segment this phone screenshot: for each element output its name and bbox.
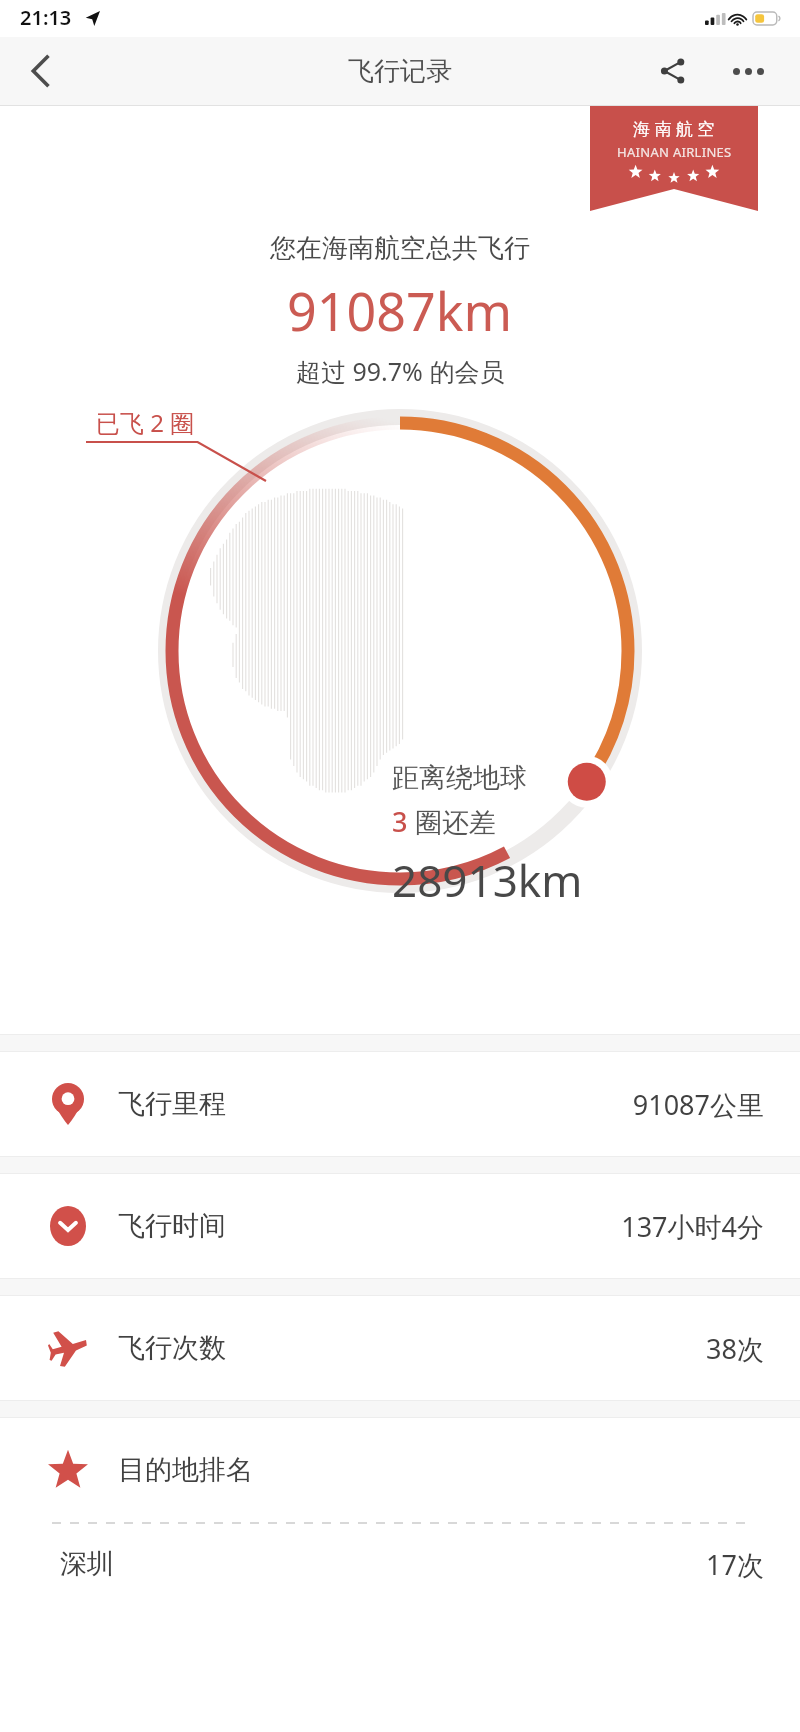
staticText: 91087km (287, 275, 513, 346)
staticText: 飞行时间 (118, 1209, 226, 1243)
staticText: 已飞 2 圈 (96, 406, 195, 439)
button[interactable]: Back (0, 37, 80, 105)
button[interactable]: 飞行时间 (0, 1174, 800, 1278)
staticText: 飞行里程 (118, 1087, 226, 1121)
staticText: 您在海南航空总共飞行 (270, 232, 530, 265)
staticText: 飞行次数 (118, 1331, 226, 1365)
staticText: 深圳 (60, 1547, 114, 1581)
staticText: 137小时4分 (621, 1208, 764, 1245)
staticText: 目的地排名 (118, 1453, 253, 1487)
button[interactable]: 飞行里程 (0, 1052, 800, 1156)
staticText: 距离绕地球 (392, 761, 527, 795)
button[interactable]: More options (716, 39, 780, 103)
staticText: 圈还差 (408, 803, 497, 840)
staticText: 38次 (706, 1330, 764, 1367)
staticText: 91087公里 (632, 1086, 764, 1123)
staticText: 3 (392, 803, 408, 840)
button[interactable]: 深圳 (0, 1524, 800, 1604)
staticText: 21:13 (20, 4, 72, 31)
staticText: HAINAN AIRLINES (617, 143, 732, 161)
staticText: 飞行记录 (348, 55, 452, 88)
staticText: 28913km (392, 850, 583, 910)
button[interactable]: 飞行次数 (0, 1296, 800, 1400)
button[interactable]: Share (641, 39, 705, 103)
button[interactable]: 目的地排名 (0, 1418, 800, 1522)
staticText: 17次 (706, 1546, 764, 1583)
staticText: 海 南 航 空 (633, 117, 715, 140)
staticText: 超过 99.7% 的会员 (296, 354, 505, 388)
